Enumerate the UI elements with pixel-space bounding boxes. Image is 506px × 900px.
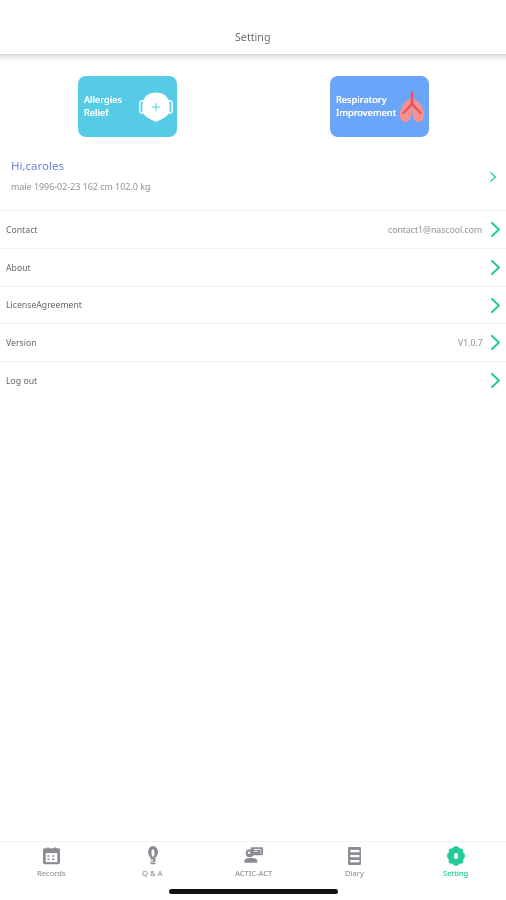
staticText: Version [6,337,37,349]
button[interactable]: Respiratory Improvement [330,76,429,137]
button[interactable]: Allergies Relief [78,76,177,137]
button[interactable]: ACTIC-ACT [203,846,304,878]
staticText: Q & A [142,868,163,878]
staticText: LicenseAgreement [6,299,82,311]
button[interactable]: Q & A [102,846,203,878]
button[interactable]: Setting [405,846,506,878]
staticText: ACTIC-ACT [235,868,273,878]
button[interactable]: Version [0,324,506,361]
button[interactable]: About [0,249,506,286]
staticText: About [6,262,31,274]
button[interactable]: Hi,caroles [0,149,506,210]
staticText: Setting [443,868,469,878]
staticText: V1.0.7 [458,337,483,349]
button[interactable]: Diary [304,846,405,878]
staticText: Setting [235,30,271,45]
button[interactable]: Records [0,846,102,878]
staticText: Contact [6,224,38,236]
button[interactable]: LicenseAgreement [0,287,506,323]
button[interactable]: Log out [0,362,506,399]
staticText: Hi,caroles [11,158,64,174]
staticText: Records [37,868,66,878]
staticText: Allergies [84,93,122,106]
button[interactable]: Contact [0,211,506,248]
staticText: Respiratory [336,93,387,106]
staticText: Diary [345,868,364,878]
staticText: Relief [84,106,109,119]
staticText: male 1996-02-23 162 cm 102.0 kg [11,180,151,192]
staticText: Improvement [336,106,397,119]
staticText: Log out [6,375,38,387]
staticText: contact1@nascool.com [388,224,483,236]
